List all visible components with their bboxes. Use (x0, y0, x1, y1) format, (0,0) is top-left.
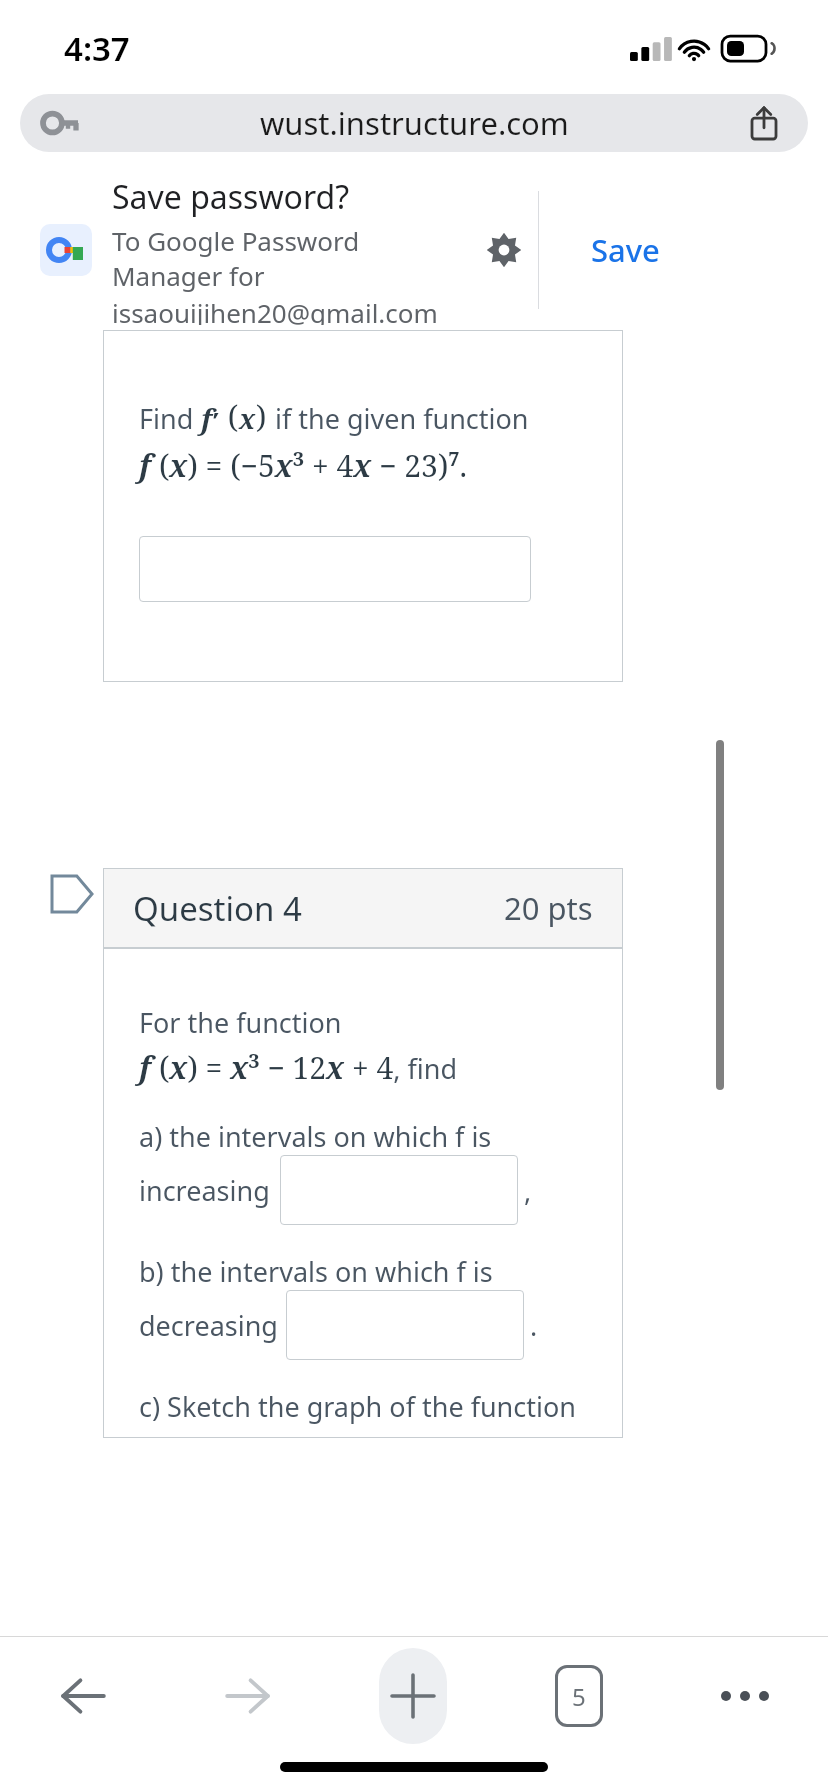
button[interactable]: Question 4 (133, 868, 593, 948)
staticText: increasing (139, 1172, 270, 1209)
button[interactable]: Save (539, 175, 711, 325)
button[interactable]: Site security (20, 94, 808, 152)
staticText: c) Sketch the graph of the function (139, 1388, 576, 1425)
staticText: Find (139, 400, 201, 437)
staticText: To Google Password Manager for (112, 223, 476, 293)
staticText: Question 4 (133, 886, 302, 931)
button[interactable]: Settings (476, 222, 532, 278)
staticText: f (201, 399, 213, 437)
button[interactable]: Tabs (496, 1636, 662, 1756)
other: Flag question (52, 876, 92, 912)
staticText: f (x) = x3 − 12x + 4, find (139, 1047, 458, 1088)
button[interactable]: New tab (330, 1636, 496, 1756)
staticText: For the function (139, 1004, 342, 1041)
staticText: x (239, 400, 256, 437)
button[interactable]: Share (744, 103, 784, 143)
button[interactable] (286, 1290, 524, 1360)
button[interactable]: More options (662, 1636, 828, 1756)
staticText: ) (256, 396, 275, 437)
staticText: 4:37 (64, 26, 130, 71)
staticText: , (524, 1172, 532, 1209)
staticText: 20 pts (504, 887, 593, 929)
button[interactable] (280, 1155, 518, 1225)
other: Site security (42, 112, 78, 134)
button[interactable]: Back (0, 1636, 165, 1756)
staticText: 5 (572, 1680, 586, 1713)
staticText: . (530, 1307, 538, 1344)
staticText: b) the intervals on which f is (139, 1253, 493, 1290)
button[interactable] (139, 536, 531, 602)
staticText: Save (591, 229, 660, 271)
staticText: issaouijihen20@gmail.com (112, 295, 438, 325)
staticText: Save password? (112, 175, 350, 219)
staticText: decreasing (139, 1307, 278, 1344)
staticText: ′ (213, 404, 220, 437)
staticText: a) the intervals on which f is (139, 1118, 492, 1155)
staticText: ( (220, 396, 239, 437)
button[interactable]: Forward (165, 1636, 330, 1756)
staticText: f (x) = (−5x3 + 4x − 23)7. (139, 445, 468, 486)
staticText: if the given function (275, 400, 529, 437)
staticText: wust.instructure.com (260, 102, 569, 144)
